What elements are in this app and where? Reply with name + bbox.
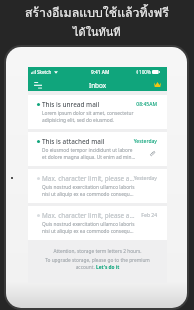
staticText: สร้างอีเมลแบบใช้แล้วทิ้งฟรี [25, 3, 169, 23]
button[interactable]: Max. character limit, please ad... [28, 206, 167, 240]
staticText: 9:41 AM [91, 69, 110, 76]
staticText: Max. character limit, please a... [42, 174, 135, 183]
staticText: Yesterday [128, 175, 157, 182]
button[interactable]: This is unread mail [28, 95, 167, 129]
staticText: To upgrade storage, please go to the pre… [36, 257, 159, 271]
staticText: 100% [139, 69, 151, 75]
staticText: Yesterday [128, 138, 157, 145]
staticText: This is attached mail [42, 137, 135, 146]
staticText: Attention, storage term letters 2 hours. [53, 248, 142, 255]
staticText: Do eiusmod tempor incididunt ut labore e… [42, 147, 136, 161]
staticText: Lorem ipsum dolor sit amet, consectetur … [42, 110, 136, 124]
staticText: Feb 24 [128, 212, 157, 219]
staticText: ได้ในทันที [73, 23, 121, 40]
staticText: Quis nostrud exercitation ullamco labori… [42, 184, 136, 198]
staticText: 08:45AM [128, 101, 157, 108]
button[interactable]: Menu [31, 78, 45, 91]
button[interactable]: Max. character limit, please a... [28, 169, 167, 203]
button[interactable]: Premium [150, 78, 164, 91]
staticText: Max. character limit, please ad... [42, 211, 135, 220]
staticText: Sketch [37, 69, 52, 75]
staticText: Inbox [89, 81, 107, 90]
staticText: This is unread mail [42, 100, 135, 109]
staticText: Quis nostrud exercitation ullamco labori… [42, 221, 136, 235]
button[interactable]: This is attached mail [28, 132, 167, 166]
